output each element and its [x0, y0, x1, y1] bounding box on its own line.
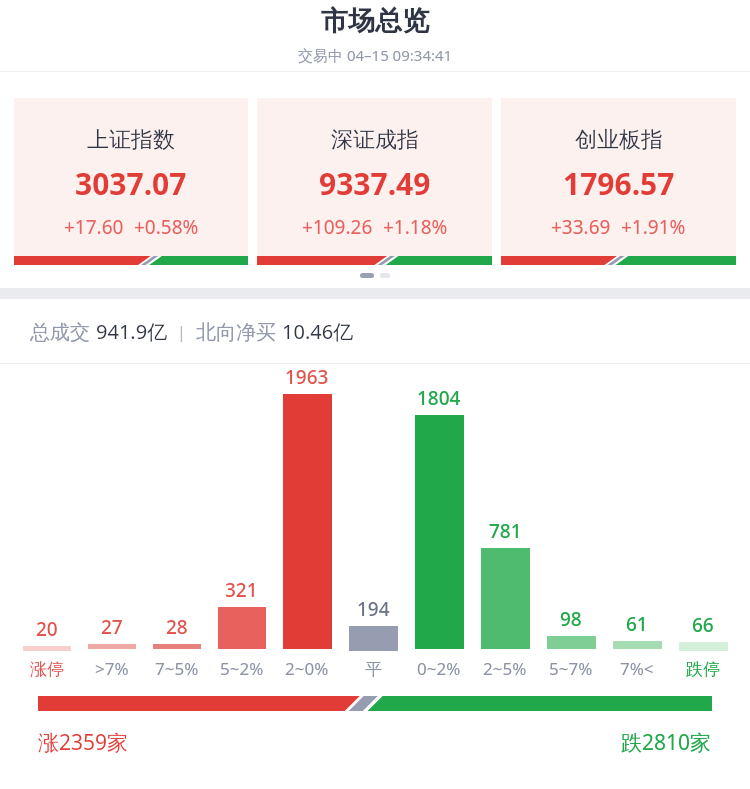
- button[interactable]: [38, 696, 712, 711]
- staticText: 深证成指: [331, 126, 419, 154]
- staticText: 2~5%: [483, 657, 527, 680]
- staticText: 1804: [417, 385, 461, 411]
- staticText: 10.46亿: [282, 318, 354, 345]
- staticText: 781: [489, 518, 522, 544]
- staticText: 总成交: [30, 318, 96, 345]
- button[interactable]: 61: [604, 611, 670, 684]
- button[interactable]: 27: [79, 614, 144, 684]
- staticText: 28: [166, 614, 188, 640]
- staticText: 0~2%: [417, 657, 461, 680]
- staticText: 9337.49: [319, 163, 431, 204]
- staticText: 941.9亿: [96, 318, 168, 345]
- staticText: +109.26: [302, 214, 373, 240]
- staticText: 61: [626, 611, 648, 637]
- staticText: 创业板指: [575, 126, 663, 154]
- button[interactable]: 创业板指: [501, 98, 736, 265]
- button[interactable]: 总成交: [0, 299, 750, 363]
- staticText: 上证指数: [87, 126, 175, 154]
- other: Page 2: [380, 273, 390, 278]
- staticText: 交易中 04–15 09:34:41: [298, 45, 453, 65]
- staticText: >7%: [95, 657, 129, 680]
- staticText: |: [168, 320, 196, 343]
- staticText: 平: [365, 659, 382, 680]
- staticText: 涨2359家: [38, 728, 129, 757]
- staticText: +1.91%: [621, 214, 686, 240]
- button[interactable]: 781: [472, 518, 538, 684]
- other: Page 1: [360, 273, 374, 278]
- button[interactable]: 98: [538, 606, 604, 684]
- button[interactable]: 上证指数: [14, 98, 248, 265]
- staticText: +17.60: [64, 214, 124, 240]
- staticText: 5~2%: [220, 657, 264, 680]
- staticText: +0.58%: [134, 214, 199, 240]
- staticText: 1963: [285, 364, 329, 390]
- staticText: 北向净买: [196, 318, 282, 345]
- button[interactable]: 28: [144, 614, 209, 684]
- staticText: 5~7%: [549, 657, 593, 680]
- staticText: 27: [101, 614, 123, 640]
- staticText: 98: [560, 606, 582, 632]
- button[interactable]: 深证成指: [257, 98, 492, 265]
- staticText: 321: [225, 577, 258, 603]
- button[interactable]: 194: [340, 596, 406, 684]
- staticText: 7~5%: [155, 657, 199, 680]
- staticText: 跌停: [686, 659, 720, 680]
- button[interactable]: 20: [14, 616, 79, 684]
- staticText: 66: [692, 612, 714, 638]
- staticText: +33.69: [551, 214, 611, 240]
- staticText: 1796.57: [563, 163, 675, 204]
- staticText: 跌2810家: [621, 728, 712, 757]
- staticText: 20: [36, 616, 58, 642]
- staticText: 2~0%: [285, 657, 329, 680]
- staticText: 194: [357, 596, 390, 622]
- button[interactable]: 66: [670, 612, 736, 684]
- staticText: 7%<: [620, 657, 654, 680]
- staticText: 3037.07: [75, 163, 187, 204]
- button[interactable]: 1963: [274, 364, 340, 684]
- button[interactable]: 1804: [406, 385, 472, 684]
- staticText: 涨停: [30, 659, 64, 680]
- button[interactable]: 321: [209, 577, 274, 684]
- staticText: 市场总览: [321, 4, 429, 38]
- staticText: +1.18%: [383, 214, 448, 240]
- button[interactable]: 市场总览: [0, 0, 750, 71]
